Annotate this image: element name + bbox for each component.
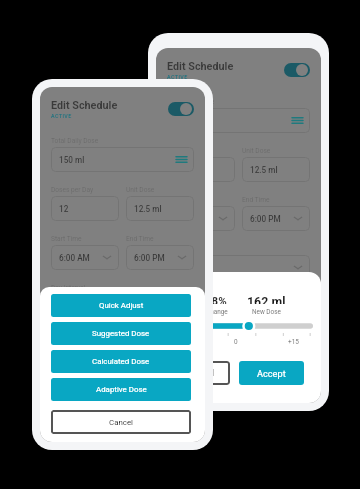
staticText: 6:00 AM bbox=[175, 214, 206, 224]
staticText: Start Time bbox=[167, 196, 198, 204]
button[interactable]: Morning and evening bbox=[51, 343, 194, 368]
staticText: 6:00 PM bbox=[250, 214, 281, 224]
staticText: New Dose bbox=[252, 308, 281, 316]
staticText: Doses per Day bbox=[51, 186, 94, 194]
button[interactable]: Schedule active toggle bbox=[284, 63, 310, 77]
button[interactable]: Morning and evening bbox=[167, 304, 310, 329]
staticText: 12.5 ml bbox=[134, 204, 162, 214]
staticText: Day Interval bbox=[51, 284, 86, 292]
button[interactable]: 6:00 PM bbox=[126, 245, 194, 270]
staticText: Unit Dose bbox=[242, 147, 271, 155]
staticText: 150 ml bbox=[59, 155, 85, 165]
staticText: Start Time bbox=[51, 235, 82, 243]
button[interactable]: Dose adjustment slider bbox=[171, 320, 313, 332]
staticText: 0 bbox=[234, 338, 238, 346]
staticText: Morning and evening bbox=[59, 351, 136, 361]
button[interactable]: 6:00 PM bbox=[242, 206, 310, 231]
button[interactable]: Calculated Dose bbox=[51, 350, 191, 373]
button[interactable]: Every Day bbox=[51, 294, 194, 319]
button[interactable]: 150 ml bbox=[167, 108, 310, 133]
staticText: 6:00 AM bbox=[59, 253, 90, 263]
button[interactable]: Adaptive Dose bbox=[51, 378, 191, 401]
button[interactable]: Every Day bbox=[167, 255, 310, 280]
staticText: -8% bbox=[207, 294, 227, 304]
staticText: Day Interval bbox=[167, 245, 202, 253]
staticText: Change bbox=[206, 308, 228, 316]
staticText: Doses per Day bbox=[167, 147, 210, 155]
staticText: Accept bbox=[257, 368, 286, 379]
button[interactable]: 12.5 ml bbox=[126, 196, 194, 221]
staticText: 12.5 ml bbox=[250, 165, 278, 175]
staticText: End Time bbox=[126, 235, 154, 243]
staticText: Total Daily Dose bbox=[51, 137, 99, 145]
staticText: Unit Dose bbox=[126, 186, 155, 194]
staticText: 12 bbox=[175, 165, 185, 175]
staticText: Every Day bbox=[175, 263, 211, 273]
button[interactable]: Cancel bbox=[172, 361, 230, 385]
staticText: Cancel bbox=[109, 418, 134, 427]
button[interactable]: Accept bbox=[239, 361, 304, 385]
staticText: Cancel bbox=[189, 368, 214, 378]
button[interactable]: Cancel bbox=[51, 410, 191, 434]
staticText: 6:00 PM bbox=[134, 253, 165, 263]
staticText: ACTIVE bbox=[51, 113, 72, 119]
button[interactable]: Quick Adjust bbox=[51, 294, 191, 317]
button[interactable]: Schedule active toggle bbox=[168, 102, 194, 116]
staticText: Edit Schedule bbox=[51, 99, 118, 112]
staticText: Suggested Dose bbox=[92, 329, 150, 338]
button[interactable]: 150 ml bbox=[51, 147, 194, 172]
button[interactable]: Suggested Dose bbox=[51, 322, 191, 345]
staticText: 12 bbox=[59, 204, 69, 214]
staticText: Quick Adjust bbox=[99, 301, 144, 310]
staticText: 162 ml bbox=[247, 294, 286, 304]
button[interactable]: 12 bbox=[51, 196, 119, 221]
button[interactable]: 6:00 AM bbox=[51, 245, 119, 270]
staticText: Total Daily Dose bbox=[167, 98, 215, 106]
staticText: Edit Schedule bbox=[167, 60, 234, 73]
button[interactable]: 12.5 ml bbox=[242, 157, 310, 182]
staticText: Calculated Dose bbox=[92, 357, 150, 366]
staticText: End Time bbox=[242, 196, 270, 204]
staticText: ACTIVE bbox=[167, 74, 188, 80]
button[interactable]: 6:00 AM bbox=[167, 206, 235, 231]
staticText: +15 bbox=[288, 338, 299, 346]
button[interactable]: 12 bbox=[167, 157, 235, 182]
staticText: Adaptive Dose bbox=[96, 385, 147, 394]
staticText: Morning and evening bbox=[175, 312, 252, 322]
